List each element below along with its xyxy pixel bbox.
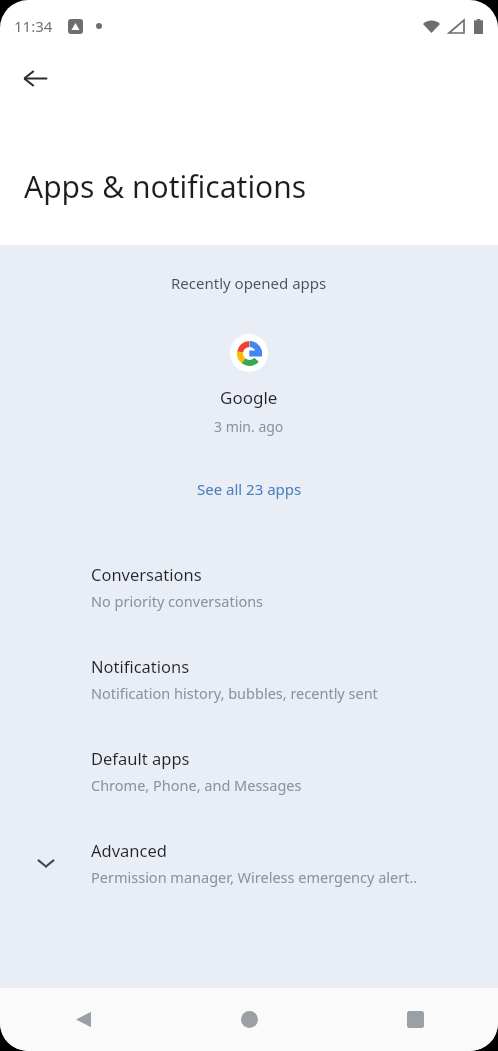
- staticText: See all 23 apps: [197, 479, 302, 499]
- button[interactable]: Default apps: [0, 725, 498, 817]
- button[interactable]: Notifications: [0, 633, 498, 725]
- staticText: Notifications: [91, 655, 190, 677]
- button[interactable]: Back: [9, 52, 61, 104]
- button[interactable]: Home: [166, 988, 332, 1051]
- button[interactable]: Advanced: [0, 817, 498, 909]
- staticText: Conversations: [91, 563, 202, 585]
- staticText: 11:34: [14, 16, 53, 36]
- staticText: Notification history, bubbles, recently …: [91, 683, 378, 703]
- button[interactable]: Conversations: [0, 541, 498, 633]
- staticText: 3 min. ago: [214, 417, 284, 436]
- button[interactable]: See all 23 apps: [0, 472, 498, 506]
- button[interactable]: Google: [0, 334, 498, 436]
- staticText: Chrome, Phone, and Messages: [91, 775, 302, 795]
- staticText: Google: [220, 386, 278, 409]
- staticText: Apps & notifications: [24, 166, 307, 207]
- staticText: Advanced: [91, 839, 167, 861]
- staticText: Recently opened apps: [171, 273, 327, 293]
- staticText: Permission manager, Wireless emergency a…: [91, 867, 418, 887]
- staticText: No priority conversations: [91, 591, 264, 611]
- staticText: Default apps: [91, 747, 190, 769]
- button[interactable]: Recent apps: [332, 988, 498, 1051]
- button[interactable]: Back: [0, 988, 166, 1051]
